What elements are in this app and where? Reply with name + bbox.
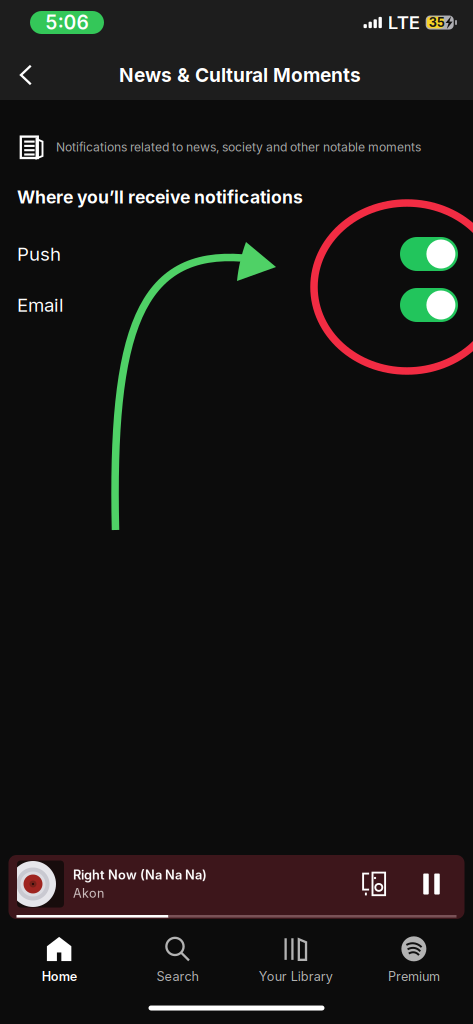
button[interactable]: Premium	[355, 931, 473, 989]
button[interactable]: Home	[0, 931, 118, 989]
staticText: Search	[156, 969, 198, 984]
staticText: Right Now (Na Na Na)	[73, 867, 207, 883]
staticText: Email	[17, 294, 64, 316]
staticText: LTE	[388, 11, 420, 34]
button[interactable]: Right Now (Na Na Na)	[8, 855, 464, 919]
button[interactable]: Connect to a device	[358, 868, 390, 900]
button[interactable]: Push	[0, 232, 473, 276]
staticText: Push	[17, 243, 61, 265]
staticText: Where you’ll receive notifications	[17, 186, 303, 208]
button[interactable]: Your Library	[236, 931, 355, 989]
staticText: Notifications related to news, society a…	[56, 140, 421, 154]
staticText: Your Library	[259, 969, 333, 984]
button[interactable]: Back	[4, 53, 48, 97]
button[interactable]: Pause	[416, 869, 446, 899]
staticText: Premium	[388, 969, 440, 984]
staticText: Akon	[73, 886, 104, 901]
staticText: 5:06	[45, 11, 88, 34]
button[interactable]: Search	[118, 931, 236, 989]
staticText: 35	[429, 15, 445, 30]
button[interactable]: Email	[0, 283, 473, 327]
staticText: News & Cultural Moments	[119, 63, 361, 87]
staticText: Home	[42, 969, 77, 984]
